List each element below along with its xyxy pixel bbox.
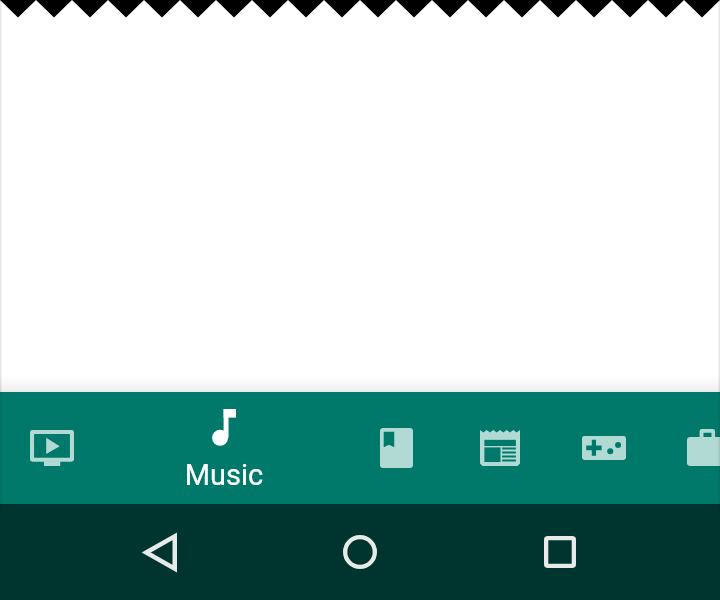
button[interactable]: Music bbox=[104, 392, 344, 504]
button[interactable]: Games bbox=[552, 392, 656, 504]
button[interactable]: Home bbox=[320, 504, 400, 600]
button[interactable]: Apps bbox=[656, 392, 720, 504]
button[interactable]: Recents bbox=[520, 504, 600, 600]
button[interactable]: Movies & TV bbox=[0, 392, 104, 504]
button[interactable]: Books bbox=[344, 392, 448, 504]
staticText: Music bbox=[104, 458, 344, 492]
button[interactable]: Back bbox=[120, 504, 200, 600]
button[interactable]: Newsstand bbox=[448, 392, 552, 504]
